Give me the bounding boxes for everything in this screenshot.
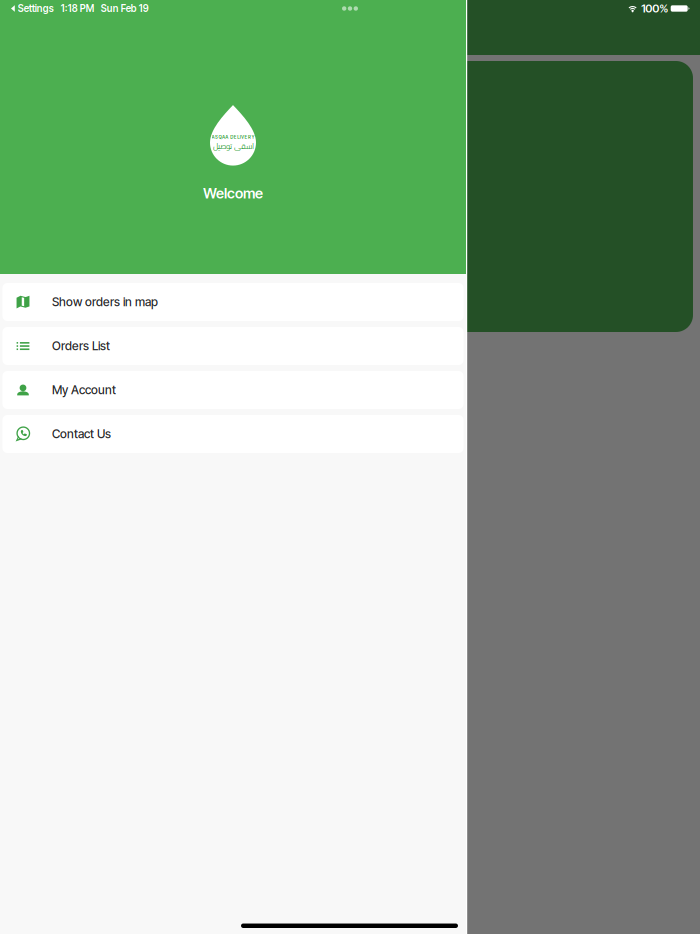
staticText: 1:18 PM bbox=[61, 3, 94, 14]
staticText: Contact Us bbox=[52, 427, 111, 441]
staticText: Settings bbox=[18, 3, 54, 14]
staticText: 100% bbox=[641, 2, 668, 15]
staticText: Show orders in map bbox=[52, 295, 158, 309]
staticText: Orders List bbox=[52, 339, 110, 353]
button[interactable]: Contact Us bbox=[2, 415, 463, 453]
button[interactable]: Orders List bbox=[2, 327, 463, 365]
staticText: Sun Feb 19 bbox=[101, 3, 149, 14]
button[interactable]: Settings bbox=[0, 0, 54, 17]
button[interactable]: Show orders in map bbox=[2, 283, 463, 321]
button[interactable]: My Account bbox=[2, 371, 463, 409]
staticText: My Account bbox=[52, 383, 116, 397]
button[interactable]: Multitasking options bbox=[336, 0, 364, 16]
staticText: ASQAA DELIVERY bbox=[212, 134, 254, 140]
staticText: Welcome bbox=[203, 185, 263, 202]
staticText: اسقى توصيل bbox=[212, 139, 253, 153]
